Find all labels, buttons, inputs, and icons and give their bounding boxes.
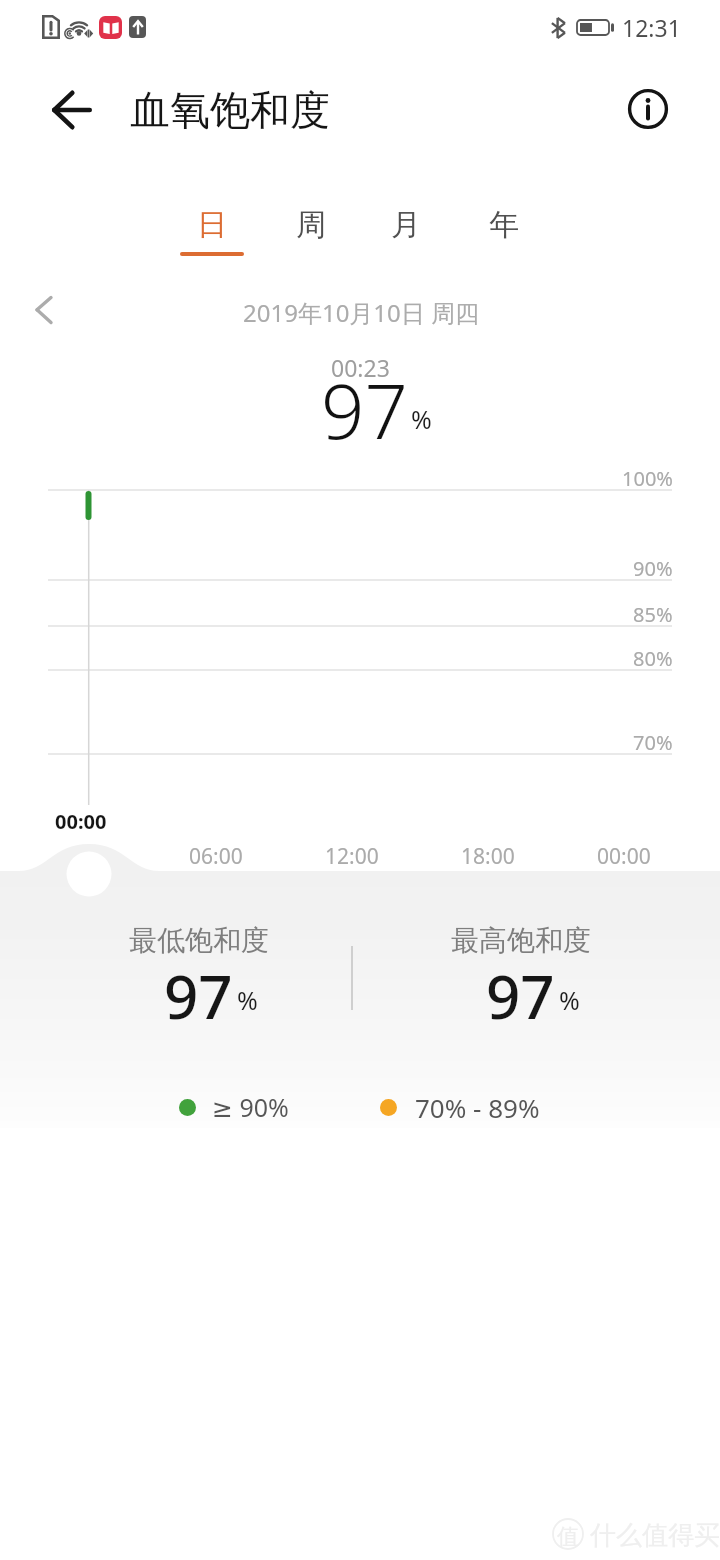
staticText: 周 [296,206,326,244]
staticText: 06:00 [189,842,243,870]
staticText: 12:00 [325,842,379,870]
staticText: 00:00 [55,808,107,835]
button[interactable]: 年 [456,196,552,274]
button[interactable]: 最低饱和度 [69,918,329,1038]
button[interactable]: ≥ 90% [170,1089,289,1125]
button[interactable]: Information [620,81,676,137]
staticText: 97 [486,955,555,1037]
staticText: 80% [633,645,673,671]
staticText: 70% [633,729,673,755]
staticText: 什么值得买 [590,1519,720,1552]
staticText: % [559,983,580,1017]
staticText: 70% - 89% [415,1090,540,1125]
staticText: 年 [489,206,519,244]
button[interactable]: 周 [263,196,359,274]
staticText: 12:31 [622,12,681,43]
staticText: 00:23 [331,352,390,383]
staticText: % [237,983,258,1017]
staticText: 最高饱和度 [451,923,591,958]
button[interactable]: 最高饱和度 [391,918,651,1038]
staticText: ≥ 90% [212,1090,289,1124]
button[interactable]: 日 [164,196,260,274]
staticText: % [411,402,432,436]
button[interactable]: Back [40,80,104,144]
staticText: 值 [557,1523,579,1551]
button[interactable]: Previous day [14,286,62,334]
staticText: 97 [164,955,233,1037]
staticText: 最低饱和度 [129,923,269,958]
staticText: 85% [633,601,673,627]
staticText: 00:00 [597,842,651,870]
staticText: 97 [321,358,408,458]
staticText: 18:00 [461,842,515,870]
button[interactable]: 70% - 89% [372,1089,540,1125]
staticText: 2019年10月10日 周四 [243,296,480,329]
staticText: 月 [391,206,421,244]
staticText: 血氧饱和度 [130,85,330,135]
button[interactable]: 月 [358,196,454,274]
staticText: 100% [622,465,673,491]
staticText: 日 [197,206,227,244]
staticText: 90% [633,555,673,581]
